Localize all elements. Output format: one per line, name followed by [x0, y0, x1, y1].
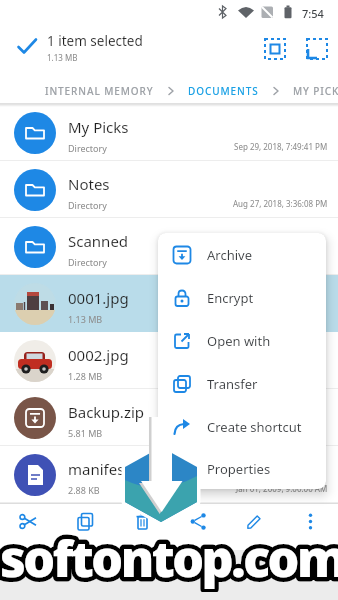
staticText: 1.13 MB [47, 52, 78, 63]
button[interactable]: Open with [158, 319, 326, 362]
button[interactable] [306, 38, 328, 60]
staticText: Directory [68, 142, 107, 154]
staticText: Directory [68, 199, 107, 211]
staticText: Notes [68, 174, 110, 194]
staticText: Backup.zip [68, 402, 145, 422]
button[interactable]: My Picks [0, 104, 338, 161]
staticText: Scanned [68, 231, 129, 251]
staticText: Sep 29, 2018, 7:49:41 PM [234, 141, 328, 152]
staticText: softontop.com [0, 524, 338, 592]
button[interactable]: Backup.zip [0, 389, 338, 446]
staticText: Archive [207, 246, 252, 264]
staticText: Aug 27, 2018, 3:36:08 PM [233, 198, 328, 209]
staticText: 5.81 MB [68, 427, 103, 439]
button[interactable] [170, 504, 226, 550]
button[interactable]: Archive [158, 233, 326, 276]
staticText: Jan 01, 2009, 9:00:00 AM [236, 483, 328, 494]
button[interactable]: Properties [158, 448, 326, 489]
staticText: 0001.jpg [68, 288, 129, 308]
button[interactable]: manifest.xml [0, 446, 338, 503]
staticText: My Picks [68, 117, 129, 137]
button[interactable]: 0001.jpg [0, 275, 338, 332]
button[interactable]: Scanned [0, 218, 338, 275]
staticText: Properties [207, 460, 271, 478]
button[interactable]: 0002.jpg [0, 332, 338, 389]
button[interactable]: DOCUMENTS [188, 84, 259, 98]
button[interactable] [0, 504, 57, 550]
button[interactable]: INTERNAL MEMORY [45, 84, 154, 98]
button[interactable]: Notes [0, 161, 338, 218]
staticText: MY PICKS [293, 84, 338, 98]
button[interactable]: Encrypt [158, 276, 326, 319]
button[interactable]: Create shortcut [158, 405, 326, 448]
staticText: 1.13 MB [68, 313, 103, 325]
button[interactable]: MY PICKS [293, 84, 338, 98]
staticText: 2.88 KB [68, 484, 100, 496]
staticText: 1.28 MB [68, 370, 103, 382]
staticText: Open with [207, 332, 271, 350]
staticText: 7:54 [302, 6, 324, 21]
button[interactable]: Transfer [158, 362, 326, 405]
staticText: softontop.com [0, 524, 338, 592]
staticText: DOCUMENTS [188, 84, 259, 98]
staticText: 1 item selected [47, 32, 143, 50]
button[interactable] [264, 38, 286, 60]
button[interactable] [226, 504, 282, 550]
staticText: manifest.xml [68, 459, 160, 479]
staticText: Encrypt [207, 289, 254, 307]
button[interactable] [282, 504, 338, 550]
button[interactable] [17, 37, 39, 59]
staticText: INTERNAL MEMORY [45, 84, 154, 98]
staticText: Directory [68, 256, 107, 268]
button[interactable] [114, 504, 170, 550]
staticText: Transfer [207, 375, 258, 393]
button[interactable] [57, 504, 114, 550]
staticText: Create shortcut [207, 418, 302, 436]
staticText: 0002.jpg [68, 345, 129, 365]
